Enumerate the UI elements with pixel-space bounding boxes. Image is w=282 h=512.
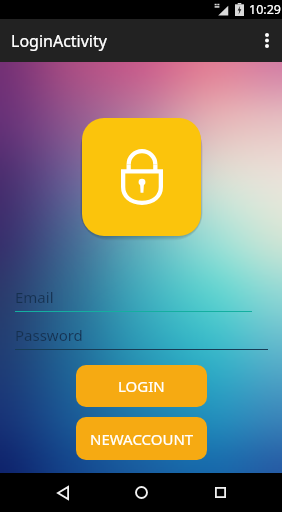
- staticText: 10:29: [249, 1, 281, 18]
- staticText: LoginActivity: [11, 30, 107, 52]
- button[interactable]: Back: [40, 473, 86, 512]
- button[interactable]: LOGIN: [76, 365, 207, 407]
- button[interactable]: NEWACCOUNT: [76, 417, 207, 460]
- button[interactable]: Lock: [82, 118, 201, 236]
- staticText: NEWACCOUNT: [90, 429, 194, 449]
- button[interactable]: Recent apps: [197, 473, 243, 512]
- button[interactable]: More options: [247, 19, 282, 62]
- staticText: LOGIN: [118, 376, 165, 396]
- button[interactable]: Home: [118, 473, 164, 512]
- staticText: Email: [15, 287, 54, 307]
- staticText: Password: [15, 325, 83, 345]
